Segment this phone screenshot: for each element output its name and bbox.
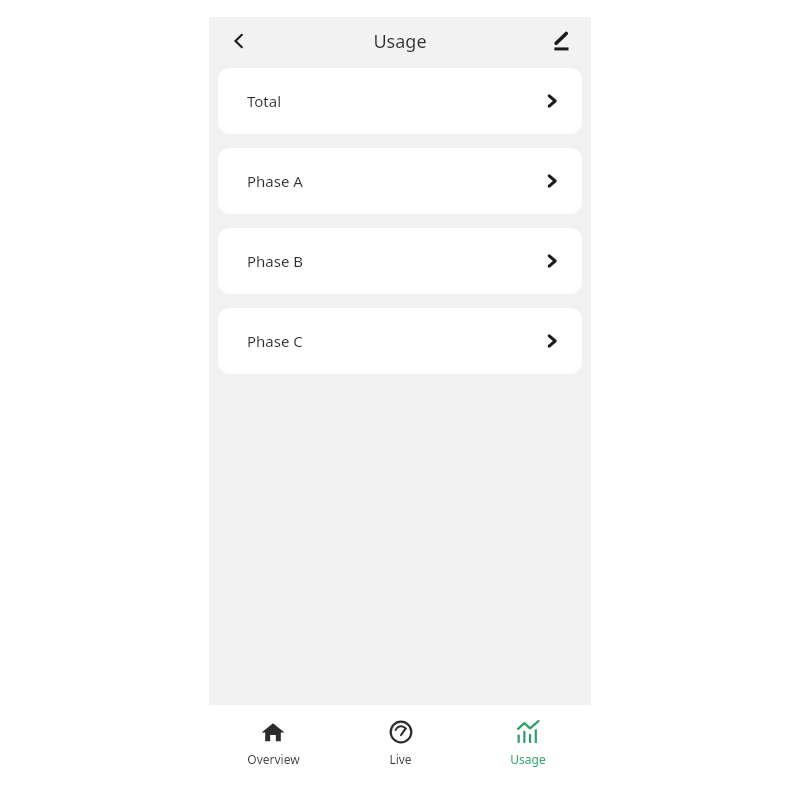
button[interactable]: Live	[337, 705, 464, 767]
button[interactable]: Usage	[464, 705, 591, 767]
button[interactable]: Phase A	[218, 148, 582, 214]
staticText: Live	[389, 751, 412, 767]
staticText: Usage	[510, 751, 546, 767]
staticText: Usage	[373, 29, 427, 54]
button[interactable]: Back	[219, 21, 259, 61]
staticText: Phase B	[247, 251, 304, 271]
button[interactable]: Total	[218, 68, 582, 134]
button[interactable]: Phase C	[218, 308, 582, 374]
staticText: Overview	[247, 751, 300, 767]
staticText: Total	[247, 91, 282, 111]
staticText: Phase A	[247, 171, 303, 191]
button[interactable]: Phase B	[218, 228, 582, 294]
button[interactable]: Overview	[209, 705, 337, 767]
staticText: Phase C	[247, 331, 303, 351]
button[interactable]: Edit	[541, 21, 581, 61]
